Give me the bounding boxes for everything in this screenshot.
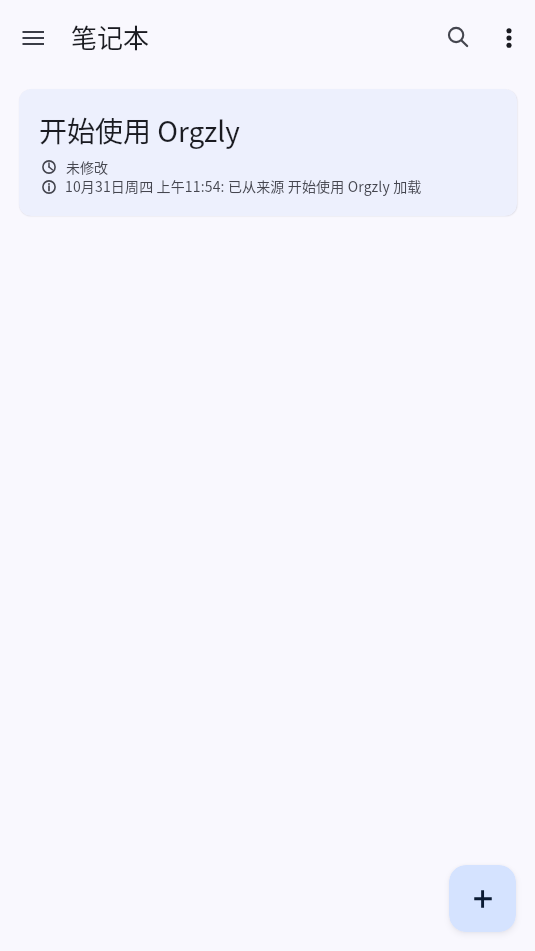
button[interactable]: New notebook: [449, 865, 516, 932]
staticText: 10月31日周四 上午11:54: 已从来源 开始使用 Orgzly 加载: [65, 176, 422, 196]
staticText: 未修改: [66, 157, 108, 177]
button[interactable]: Search: [432, 14, 480, 62]
button[interactable]: 开始使用 Orgzly: [19, 89, 517, 216]
button[interactable]: More options: [485, 14, 533, 62]
staticText: 笔记本: [71, 18, 150, 56]
button[interactable]: Open navigation drawer: [9, 14, 57, 62]
staticText: 开始使用 Orgzly: [39, 110, 240, 151]
